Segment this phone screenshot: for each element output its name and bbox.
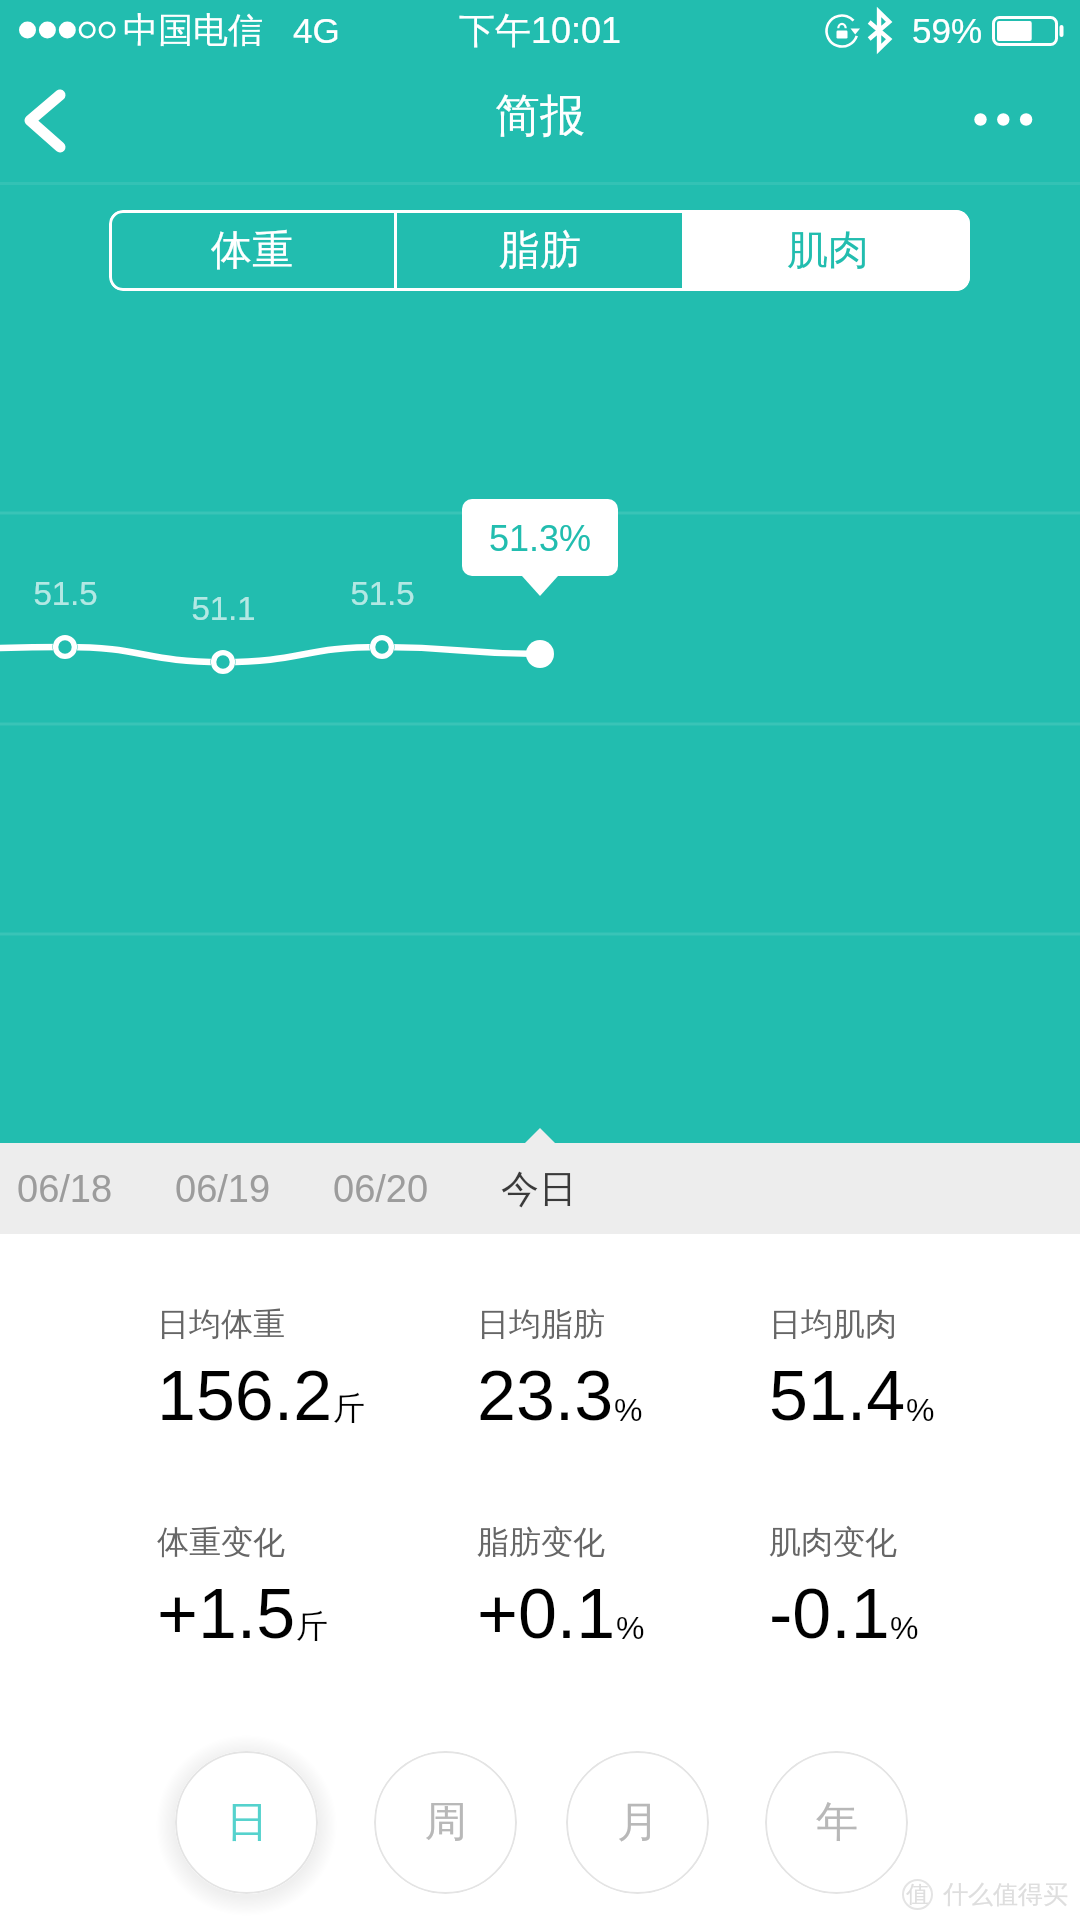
staticText: 06/18: [17, 1168, 113, 1210]
staticText: 脂肪变化: [477, 1522, 605, 1562]
staticText: 体重: [211, 225, 293, 277]
staticText: 什么值得买: [943, 1879, 1068, 1910]
button[interactable]: More options: [954, 62, 1074, 182]
staticText: 日均脂肪: [477, 1304, 605, 1344]
staticText: 日均肌肉: [769, 1304, 897, 1344]
staticText: 59%: [912, 11, 983, 50]
button[interactable]: 肌肉: [685, 210, 970, 291]
staticText: 23.3: [477, 1357, 614, 1435]
staticText: 06/20: [333, 1168, 429, 1210]
staticText: 4G: [293, 11, 340, 50]
staticText: %: [616, 1610, 645, 1646]
button[interactable]: 脂肪: [397, 210, 682, 291]
button[interactable]: Back: [0, 62, 120, 182]
staticText: 日: [226, 1796, 268, 1849]
button[interactable]: 06/19: [144, 1143, 302, 1234]
staticText: +0.1: [477, 1575, 616, 1653]
staticText: 51.5: [33, 575, 98, 612]
staticText: %: [890, 1610, 919, 1646]
staticText: 51.1: [191, 590, 256, 627]
staticText: 中国电信: [123, 8, 263, 52]
staticText: 值: [906, 1880, 929, 1909]
staticText: -0.1: [769, 1575, 890, 1653]
staticText: %: [614, 1392, 643, 1428]
staticText: 156.2: [157, 1357, 333, 1435]
staticText: 51.3%: [489, 518, 592, 558]
staticText: 肌肉变化: [769, 1522, 897, 1562]
staticText: 下午10:01: [459, 8, 622, 53]
staticText: 51.5: [350, 575, 415, 612]
staticText: 斤: [296, 1606, 328, 1646]
staticText: 日均体重: [157, 1304, 285, 1344]
button[interactable]: 06/20: [302, 1143, 460, 1234]
staticText: 年: [816, 1796, 858, 1849]
staticText: 体重变化: [157, 1522, 285, 1562]
staticText: %: [906, 1392, 935, 1428]
staticText: 肌肉: [787, 225, 869, 277]
staticText: 06/19: [175, 1168, 271, 1210]
staticText: 斤: [333, 1388, 365, 1428]
staticText: 月: [617, 1796, 659, 1849]
staticText: 周: [425, 1796, 467, 1849]
button[interactable]: 体重: [109, 210, 394, 291]
button[interactable]: 06/18: [0, 1143, 144, 1234]
staticText: 简报: [495, 88, 585, 145]
staticText: 脂肪: [499, 225, 581, 277]
staticText: +1.5: [157, 1575, 296, 1653]
button[interactable]: 周: [374, 1751, 517, 1894]
button[interactable]: 日: [175, 1751, 318, 1894]
staticText: 51.4: [769, 1357, 906, 1435]
button[interactable]: 月: [566, 1751, 709, 1894]
button[interactable]: 年: [765, 1751, 908, 1894]
staticText: 今日: [501, 1165, 577, 1213]
button[interactable]: 今日: [460, 1143, 618, 1234]
